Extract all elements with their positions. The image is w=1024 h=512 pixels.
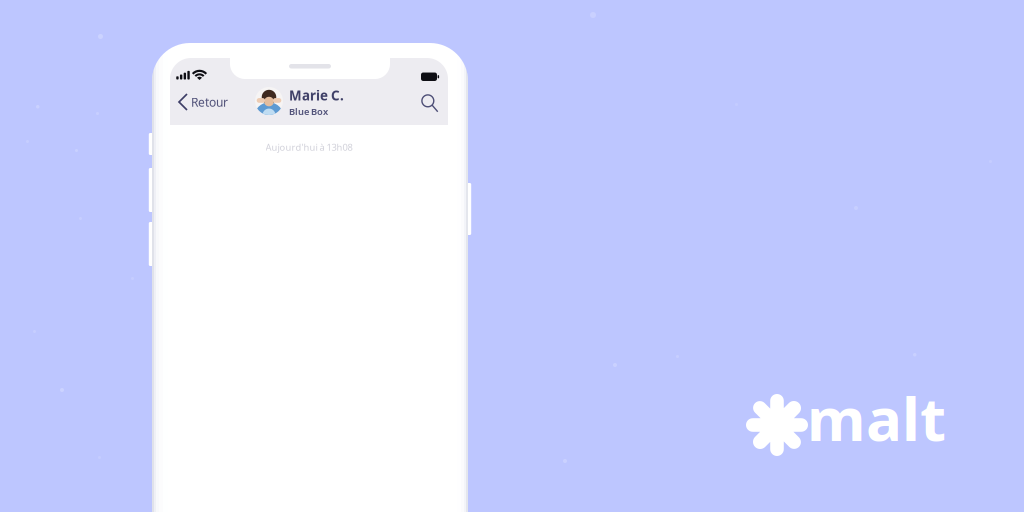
staticText: Blue Box xyxy=(289,105,328,118)
button[interactable]: Rechercher xyxy=(419,92,441,115)
staticText: Retour xyxy=(191,94,228,110)
staticText: malt xyxy=(807,378,946,458)
staticText: Aujourd'hui à 13h08 xyxy=(265,141,352,153)
button[interactable]: Retour xyxy=(179,91,228,113)
staticText: Marie C. xyxy=(289,86,344,104)
